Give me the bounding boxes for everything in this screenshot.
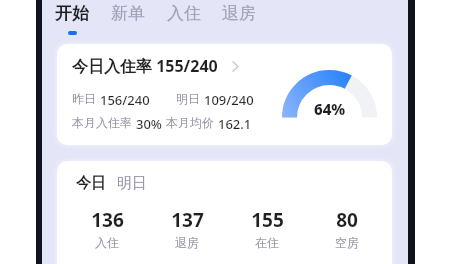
staticText: 本月入住率 <box>72 115 132 130</box>
staticText: 80 <box>336 207 358 233</box>
staticText: 开始 <box>55 3 89 24</box>
staticText: 64% <box>314 99 346 119</box>
button[interactable]: 明日 <box>117 174 147 193</box>
other: 查看详情 <box>232 60 239 73</box>
button[interactable]: 今日入住率 155/240 <box>57 44 392 145</box>
staticText: 今日 <box>76 174 106 193</box>
button[interactable]: 80 <box>307 207 387 250</box>
staticText: 109/240 <box>204 91 254 109</box>
staticText: 空房 <box>335 235 359 250</box>
staticText: 退房 <box>222 3 256 24</box>
staticText: 昨日 <box>72 91 96 106</box>
staticText: 今日入住率 155/240 <box>72 55 218 77</box>
button[interactable]: 入住 <box>158 0 210 40</box>
button[interactable]: 退房 <box>213 0 265 40</box>
staticText: 入住 <box>167 3 201 24</box>
button[interactable]: 新单 <box>102 0 154 40</box>
staticText: 本月均价 <box>166 115 214 130</box>
button[interactable]: 今日 <box>76 174 106 193</box>
button[interactable]: 137 <box>147 207 227 250</box>
staticText: 136 <box>91 207 124 233</box>
button[interactable]: 开始 <box>46 0 98 40</box>
staticText: 137 <box>171 207 204 233</box>
button[interactable]: 136 <box>67 207 147 250</box>
staticText: 162.1 <box>218 115 252 133</box>
staticText: 入住 <box>95 235 119 250</box>
staticText: 退房 <box>175 235 199 250</box>
staticText: 明日 <box>176 91 200 106</box>
staticText: 156/240 <box>100 91 150 109</box>
button[interactable]: 155 <box>227 207 307 250</box>
staticText: 明日 <box>117 174 147 193</box>
staticText: 155 <box>251 207 284 233</box>
staticText: 新单 <box>111 3 145 24</box>
staticText: 30% <box>136 115 162 133</box>
staticText: 在住 <box>255 235 279 250</box>
